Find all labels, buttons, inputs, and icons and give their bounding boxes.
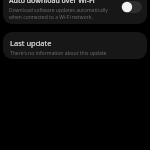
staticText: Auto download over Wi-Fi (9, 0, 95, 6)
staticText: Last update (10, 38, 52, 48)
button[interactable]: Last update (3, 32, 147, 59)
button[interactable]: Auto download over Wi-Fi toggle (121, 1, 142, 13)
staticText: There's no information about this update (10, 50, 107, 57)
staticText: Download software updates automatically … (9, 7, 108, 20)
button[interactable]: Auto download over Wi-Fi (3, 0, 147, 24)
